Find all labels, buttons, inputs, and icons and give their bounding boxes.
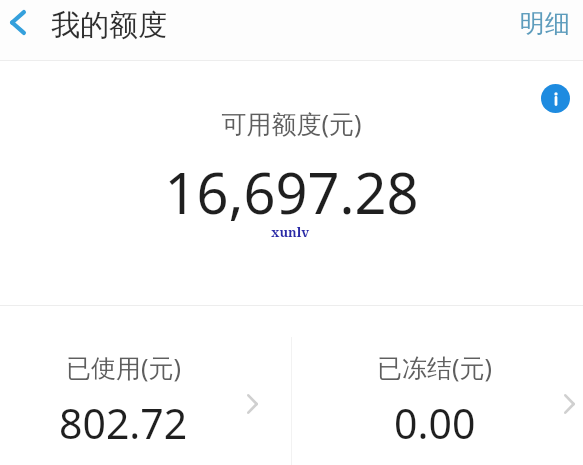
staticText: 我的额度 bbox=[51, 7, 167, 44]
staticText: 已使用(元) bbox=[66, 350, 182, 384]
staticText: 802.72 bbox=[59, 395, 188, 451]
staticText: 明细 bbox=[520, 8, 570, 39]
staticText: xunlv bbox=[271, 223, 310, 241]
button[interactable]: Info bbox=[541, 84, 570, 113]
staticText: 0.00 bbox=[394, 395, 476, 451]
staticText: 可用额度(元) bbox=[221, 106, 362, 140]
button[interactable]: Back bbox=[0, 5, 38, 43]
button[interactable]: 明细 bbox=[504, 0, 583, 51]
staticText: 已冻结(元) bbox=[377, 350, 493, 384]
button[interactable]: 已冻结(元) bbox=[291, 306, 583, 465]
staticText: 16,697.28 bbox=[164, 154, 419, 230]
button[interactable]: 已使用(元) bbox=[0, 306, 291, 465]
